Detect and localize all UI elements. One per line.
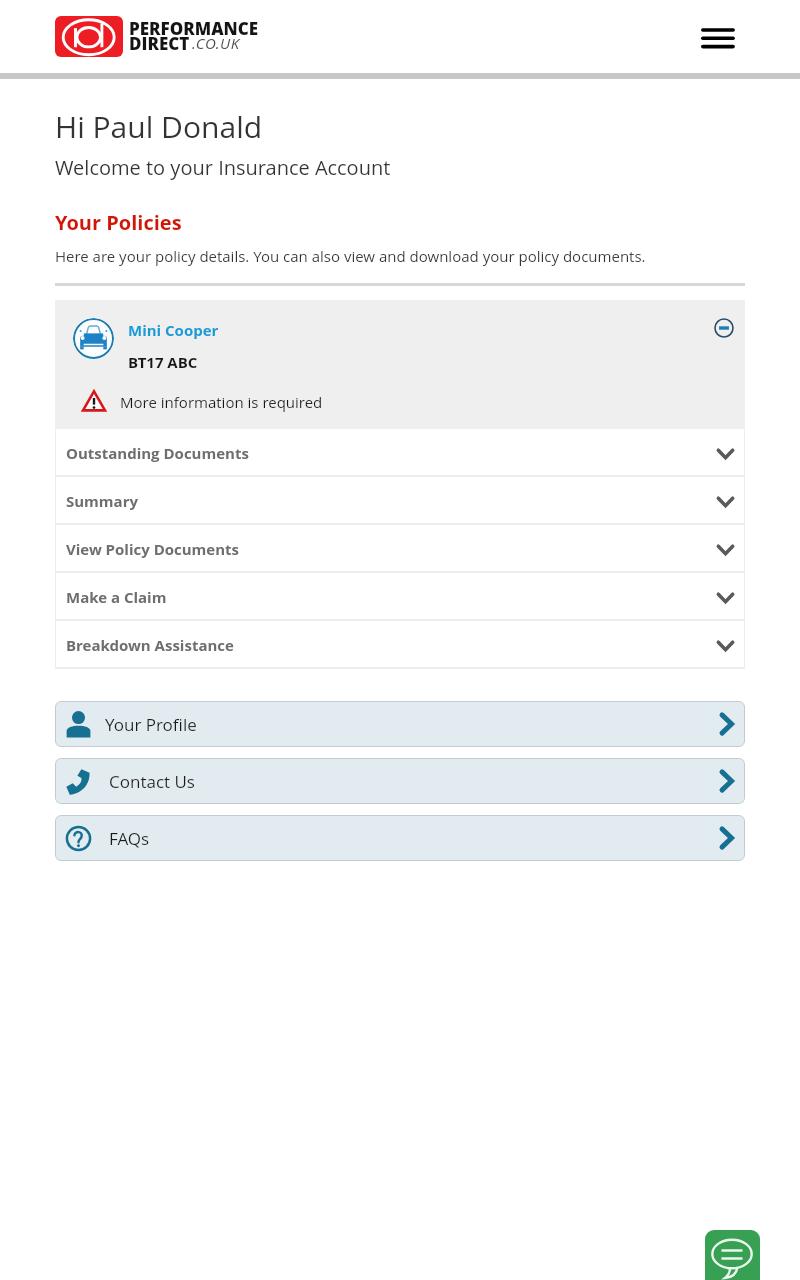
button[interactable]: Menu [693,18,743,58]
staticText: BT17 ABC [128,352,198,372]
staticText: Welcome to your Insurance Account [55,154,391,181]
staticText: .CO.UK [192,33,240,53]
button[interactable]: Your Profile [55,701,745,747]
staticText: Contact Us [109,770,195,793]
button[interactable]: FAQs [55,815,745,861]
staticText: Make a Claim [66,587,167,607]
staticText: Here are your policy details. You can al… [55,246,646,266]
button[interactable]: Contact Us [55,758,745,804]
button[interactable]: Breakdown Assistance [55,621,745,669]
button[interactable]: Make a Claim [55,573,745,621]
button[interactable]: Open chat [705,1230,760,1280]
staticText: Summary [66,491,138,511]
staticText: Mini Cooper [128,320,219,340]
staticText: More information is required [120,392,323,412]
staticText: FAQs [109,827,150,850]
staticText: Your Policies [55,209,182,236]
staticText: Outstanding Documents [66,443,249,463]
staticText: Your Profile [105,713,197,736]
button[interactable]: Outstanding Documents [55,429,745,477]
staticText: View Policy Documents [66,539,240,559]
staticText: Hi Paul Donald [55,106,263,147]
button[interactable]: Summary [55,477,745,525]
staticText: DIRECT [129,32,190,55]
staticText: Breakdown Assistance [66,635,234,655]
button[interactable]: Collapse policy [712,316,736,340]
staticText: PERFORMANCE [129,17,259,40]
button[interactable]: View Policy Documents [55,525,745,573]
